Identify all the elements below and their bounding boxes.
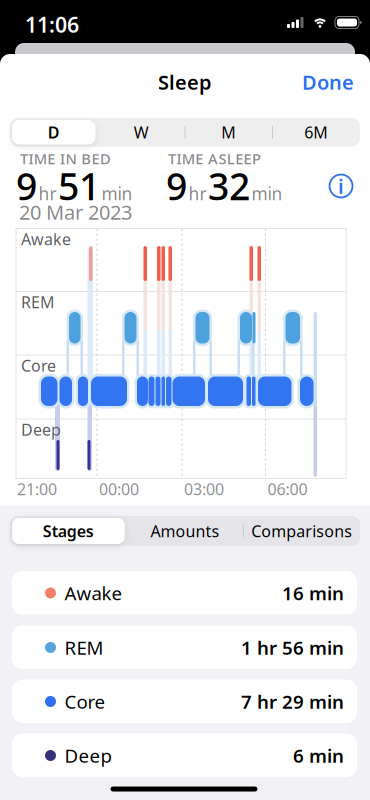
button[interactable]: Amounts — [127, 516, 243, 546]
staticText: Awake — [21, 228, 71, 250]
staticText: REM — [64, 635, 103, 660]
staticText: 6 min — [293, 743, 344, 768]
staticText: min — [251, 182, 282, 205]
staticText: min — [101, 182, 132, 205]
staticText: TIME IN BED — [20, 149, 111, 168]
staticText: Sleep — [158, 69, 212, 95]
staticText: Deep — [64, 743, 111, 768]
staticText: 00:00 — [99, 478, 139, 500]
staticText: 03:00 — [184, 478, 224, 500]
staticText: Amounts — [150, 520, 219, 542]
staticText: 21:00 — [17, 478, 57, 500]
button[interactable]: Done — [294, 68, 354, 96]
staticText: D — [48, 122, 60, 143]
staticText: Done — [302, 69, 354, 95]
staticText: i — [338, 173, 344, 199]
staticText: hr — [38, 182, 56, 205]
button[interactable]: Stages — [10, 516, 127, 546]
staticText: M — [221, 122, 236, 143]
staticText: 11:06 — [25, 10, 79, 39]
button[interactable]: Comparisons — [243, 516, 360, 546]
staticText: 20 Mar 2023 — [19, 199, 132, 225]
staticText: 16 min — [282, 581, 344, 605]
staticText: Deep — [21, 419, 61, 440]
staticText: 1 hr 56 min — [241, 635, 344, 660]
staticText: Comparisons — [251, 520, 352, 542]
staticText: Stages — [43, 520, 94, 542]
staticText: W — [134, 122, 149, 143]
button[interactable]: D — [10, 118, 97, 146]
staticText: 7 hr 29 min — [241, 689, 344, 714]
button[interactable]: M — [185, 118, 272, 146]
staticText: 32 — [208, 161, 250, 210]
staticText: TIME ASLEEP — [168, 149, 261, 168]
staticText: REM — [21, 291, 55, 313]
staticText: 6M — [304, 122, 328, 143]
staticText: 9 — [166, 161, 187, 210]
staticText: Awake — [64, 581, 122, 605]
staticText: 06:00 — [267, 478, 307, 500]
staticText: Core — [64, 689, 105, 714]
button[interactable]: About Sleep — [326, 171, 356, 201]
staticText: 51 — [58, 161, 100, 210]
staticText: Core — [21, 355, 56, 376]
staticText: hr — [188, 182, 206, 205]
staticText: 9 — [16, 161, 37, 210]
button[interactable]: W — [97, 118, 185, 146]
button[interactable]: 6M — [272, 118, 360, 146]
